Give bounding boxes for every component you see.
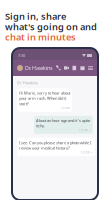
- staticText: Hi Marie, sorry to hear about your arm r…: [19, 90, 70, 106]
- staticText: 10:08 ✓: [81, 151, 93, 154]
- staticText: Dr. Hawkins: [17, 80, 38, 85]
- staticText: I see. Can you please share a photo whil…: [19, 140, 91, 151]
- staticText: About an hour ago and it's quite itchy.: [36, 118, 90, 128]
- staticText: Sign in, share: [5, 10, 66, 22]
- staticText: chat in minutes: [5, 31, 76, 43]
- staticText: 10:08: [61, 106, 70, 110]
- staticText: 7:30: [18, 53, 25, 58]
- staticText: 10:08 ✓: [79, 128, 91, 132]
- staticText: what's going on and: [5, 20, 97, 33]
- staticText: Dr. Hawkins: [25, 64, 53, 72]
